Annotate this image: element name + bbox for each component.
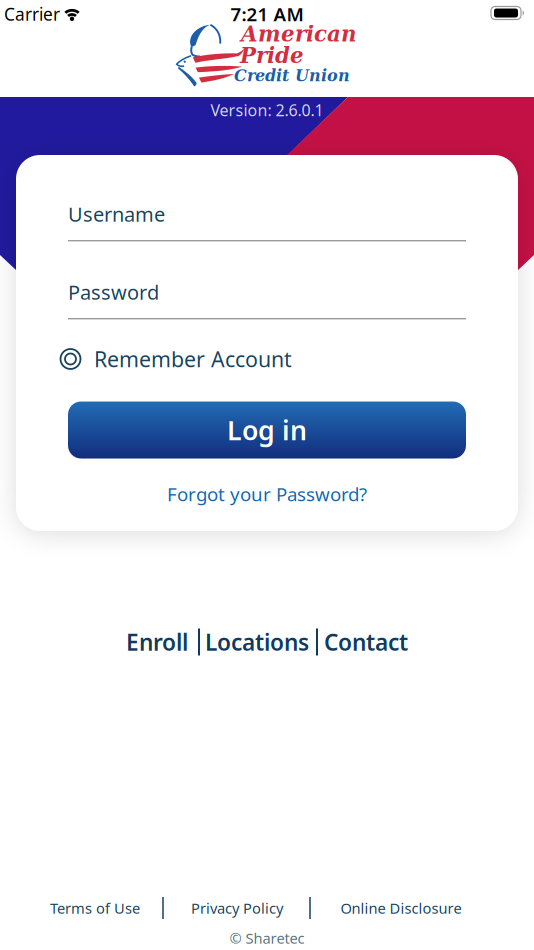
button[interactable]: Enroll (126, 627, 188, 657)
staticText: Credit Union (234, 66, 350, 85)
staticText: Remember Account (94, 345, 292, 373)
staticText: Pride (240, 43, 304, 68)
staticText: American (241, 21, 357, 47)
staticText: Carrier (4, 2, 60, 25)
staticText: Online Disclosure (340, 898, 461, 918)
staticText: Forgot your Password? (167, 482, 367, 506)
staticText: Password (68, 279, 159, 305)
staticText: Log in (227, 412, 307, 448)
button[interactable]: Privacy Policy (191, 898, 283, 918)
staticText: Locations (205, 627, 309, 657)
button[interactable]: Locations (205, 627, 309, 657)
button[interactable]: Forgot your Password? (167, 482, 367, 506)
button[interactable]: Log in (68, 401, 466, 458)
staticText: Username (68, 201, 165, 227)
staticText: Contact (324, 627, 408, 657)
button[interactable]: Terms of Use (50, 898, 140, 918)
staticText: Enroll (126, 627, 188, 657)
button[interactable]: Username (68, 201, 466, 241)
button[interactable]: Password (68, 279, 466, 319)
button[interactable]: Contact (324, 627, 408, 657)
staticText: © Sharetec (229, 928, 304, 948)
staticText: Terms of Use (50, 898, 140, 918)
staticText: Version: 2.6.0.1 (210, 99, 323, 121)
staticText: 7:21 AM (230, 2, 303, 26)
staticText: Privacy Policy (191, 898, 283, 918)
button[interactable]: Online Disclosure (340, 898, 461, 918)
button[interactable]: Remember Account (60, 345, 292, 373)
